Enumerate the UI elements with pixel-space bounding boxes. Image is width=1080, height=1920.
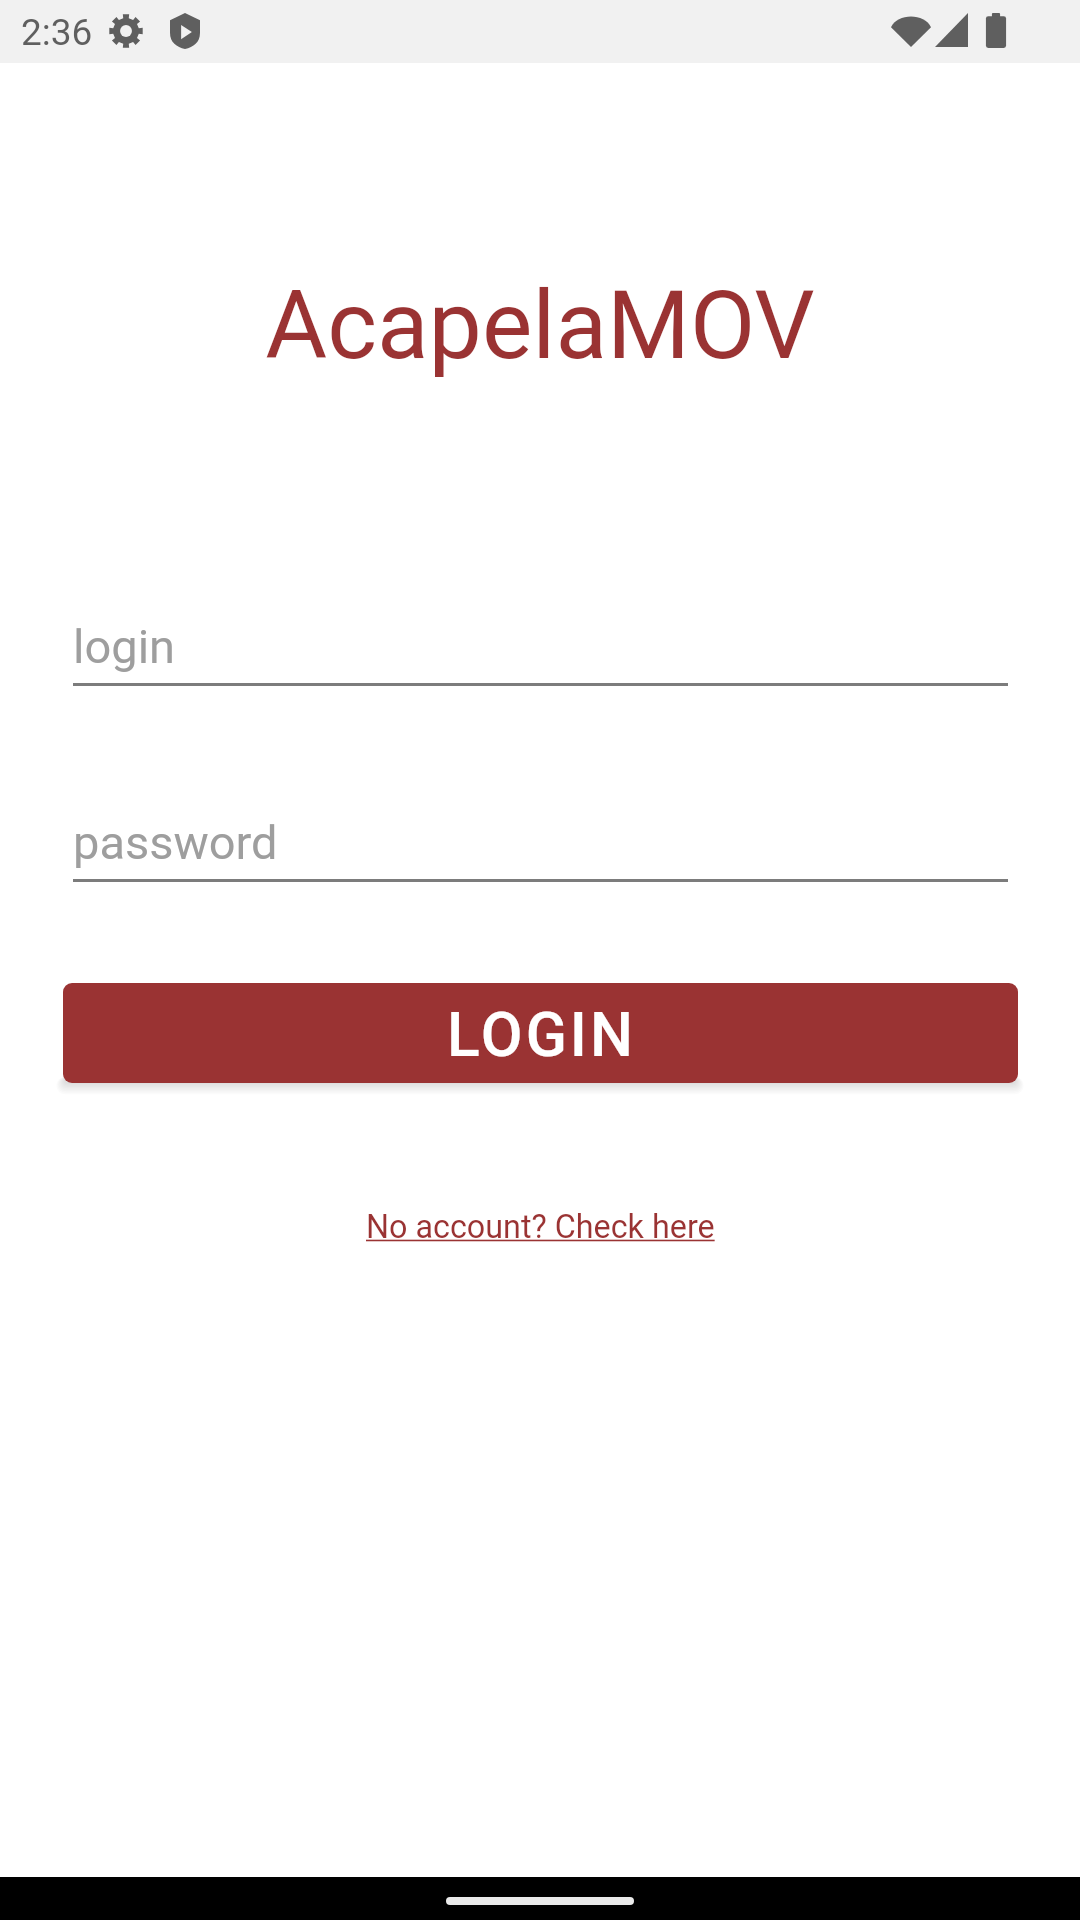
staticText: AcapelaMOV [0, 270, 1080, 381]
other: Play Protect [170, 13, 200, 49]
button[interactable]: No account? Check here [366, 1208, 715, 1246]
staticText: 2:36 [21, 11, 93, 54]
other: Cellular signal [935, 13, 968, 47]
other: Battery [984, 13, 1008, 48]
other: Home [446, 1897, 634, 1905]
staticText: password [73, 815, 278, 870]
button[interactable]: login [73, 619, 1008, 686]
other: Settings [109, 14, 143, 48]
button[interactable]: LOGIN [63, 983, 1018, 1083]
button[interactable]: password [73, 815, 1008, 882]
staticText: LOGIN [447, 1000, 636, 1071]
staticText: login [73, 619, 176, 674]
other: Wi-Fi [891, 13, 931, 47]
